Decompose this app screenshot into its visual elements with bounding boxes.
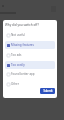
staticText: Too costly xyxy=(11,63,25,67)
staticText: Too ads xyxy=(11,53,22,57)
button[interactable]: Missing features xyxy=(5,41,55,49)
staticText: Other xyxy=(11,82,19,86)
staticText: Submit xyxy=(43,89,53,93)
staticText: Missing features xyxy=(11,43,34,47)
staticText: Not useful xyxy=(11,33,26,37)
button[interactable]: Other xyxy=(5,80,55,88)
staticText: Why did you switch off? xyxy=(5,23,39,27)
button[interactable]: Submit xyxy=(40,88,55,94)
button[interactable]: Not useful xyxy=(5,31,55,39)
staticText: Found better app xyxy=(11,72,35,76)
button[interactable]: Too ads xyxy=(5,51,55,59)
button[interactable]: Found better app xyxy=(5,70,55,78)
button[interactable]: Too costly xyxy=(5,61,55,69)
